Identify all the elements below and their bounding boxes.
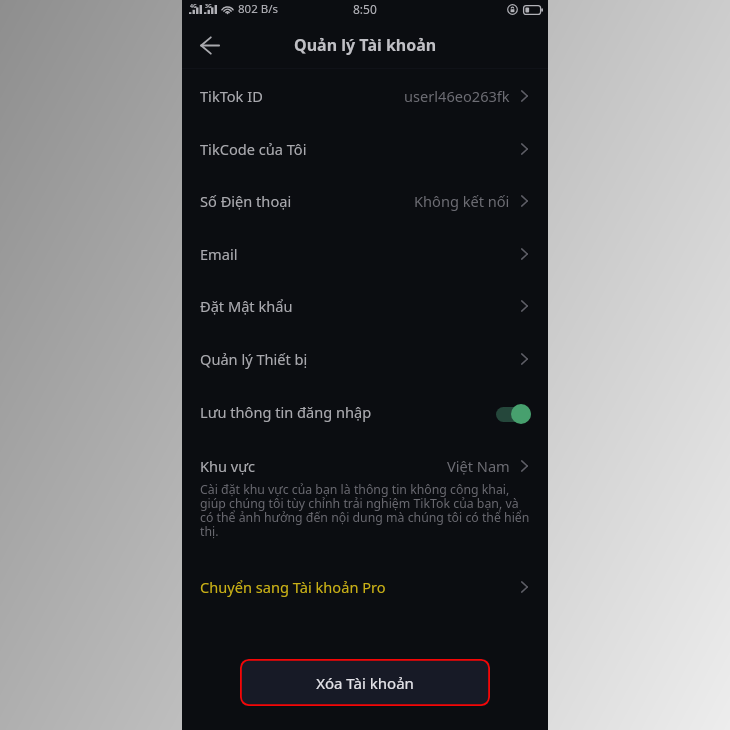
button[interactable]: Khu vực [182,442,548,490]
staticText: 8:50 [353,1,377,17]
staticText: 4G [190,2,197,9]
button[interactable]: Số Điện thoại [182,174,548,227]
button[interactable]: TikCode của Tôi [182,122,548,175]
button[interactable]: Xóa Tài khoản [240,659,490,706]
staticText: Chuyển sang Tài khoản Pro [200,577,386,597]
button[interactable]: Quản lý Thiết bị [182,332,548,385]
staticText: TikTok ID [200,86,263,106]
button[interactable]: Chuyển sang Tài khoản Pro [182,563,548,611]
staticText: 3G [205,2,212,9]
button[interactable]: Back [197,32,223,58]
staticText: Xóa Tài khoản [316,673,414,693]
staticText: userl46eo263fk [404,86,510,106]
staticText: Số Điện thoại [200,191,292,211]
staticText: Quản lý Tài khoản [294,34,437,56]
button[interactable]: Email [182,227,548,280]
button[interactable]: TikTok ID [182,69,548,122]
staticText: Email [200,244,238,264]
staticText: Lưu thông tin đăng nhập [200,402,372,422]
button[interactable]: Lưu thông tin đăng nhập [182,385,548,438]
staticText: TikCode của Tôi [200,139,307,159]
staticText: Không kết nối [414,191,510,211]
staticText: Khu vực [200,456,256,476]
button[interactable]: Đặt Mật khẩu [182,279,548,332]
staticText: Việt Nam [447,456,510,476]
staticText: Quản lý Thiết bị [200,349,308,369]
staticText: Đặt Mật khẩu [200,296,293,316]
staticText: Cài đặt khu vực của bạn là thông tin khô… [200,481,530,540]
staticText: 802 B/s [238,1,278,17]
